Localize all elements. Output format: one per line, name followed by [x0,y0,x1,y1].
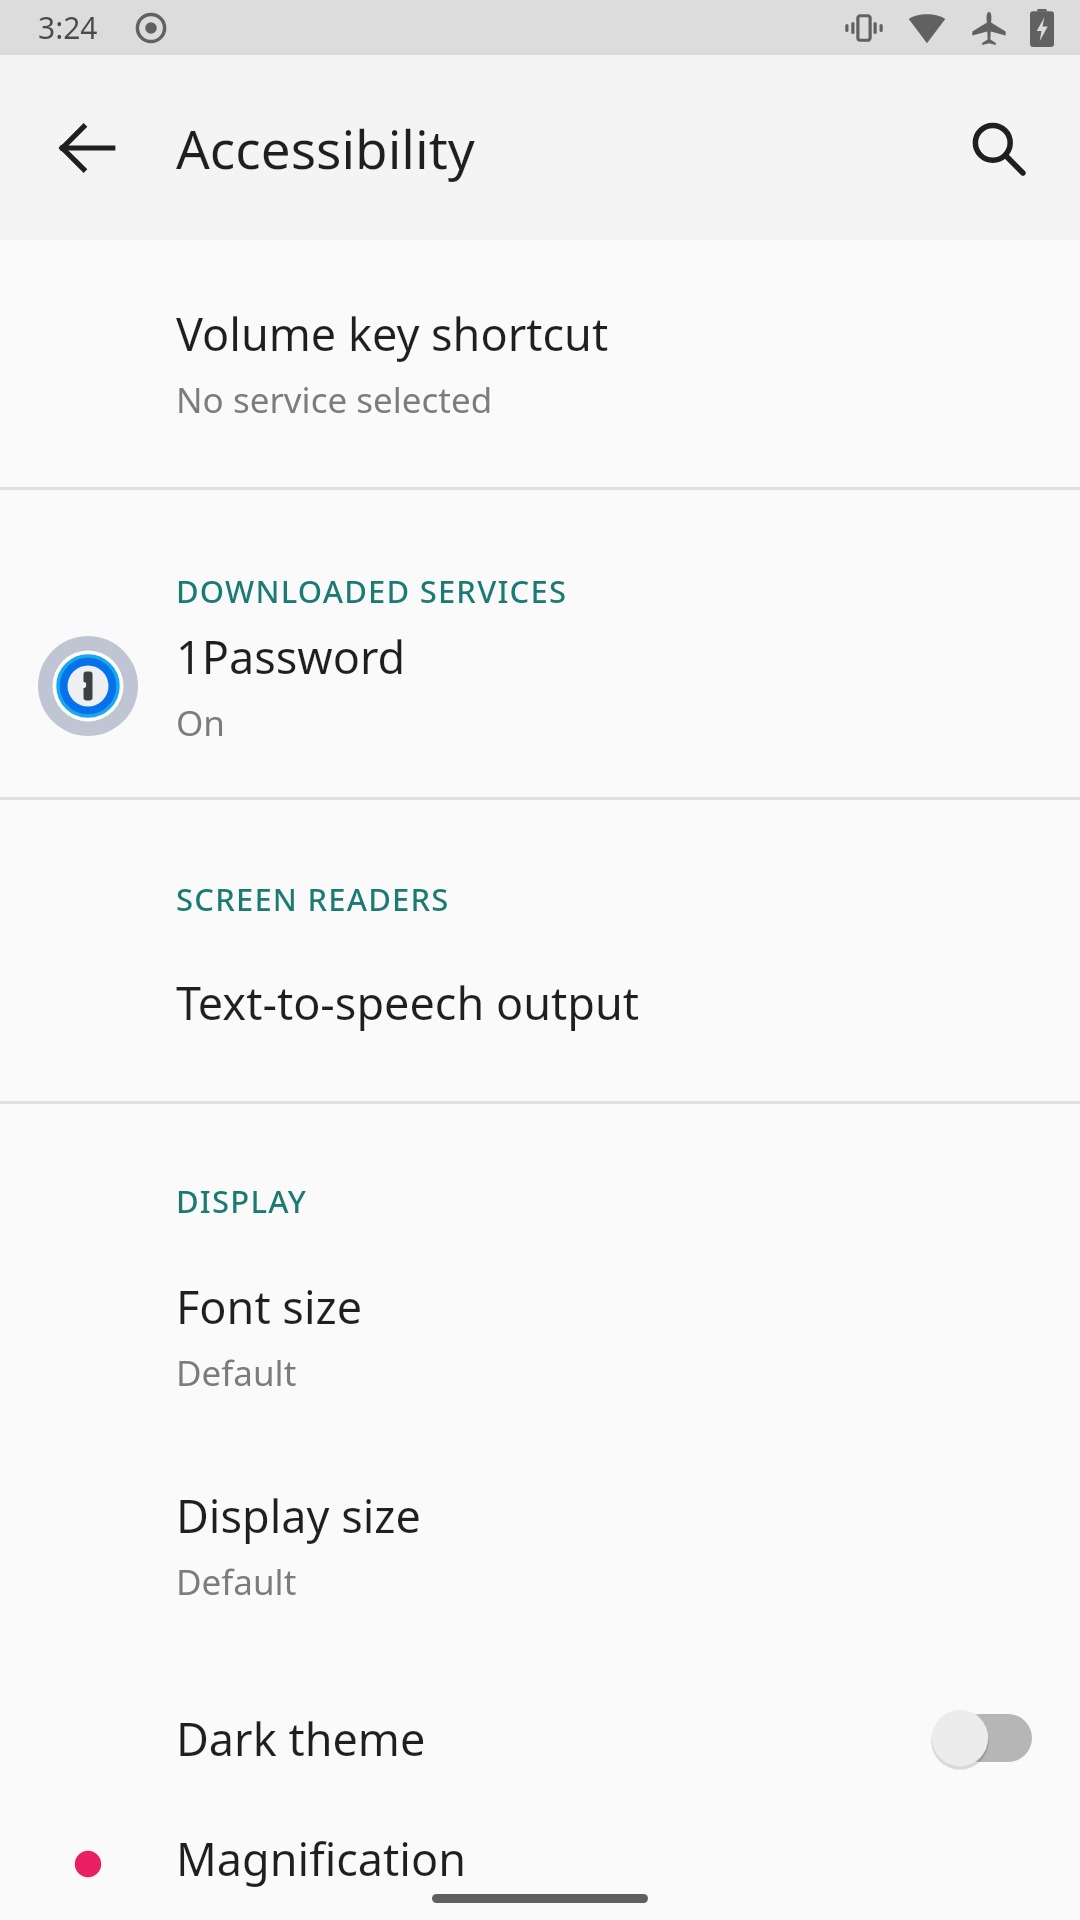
button[interactable]: 1Password [0,612,1080,797]
button[interactable]: Volume key shortcut [0,240,1080,487]
staticText: Default [176,1558,297,1606]
button[interactable]: Search [942,92,1054,204]
button[interactable]: Text-to-speech output [0,920,1080,1101]
button[interactable]: Display size [0,1441,1080,1650]
staticText: Dark theme [176,1708,928,1769]
staticText: 3:24 [38,7,98,48]
staticText: Default [176,1349,297,1397]
staticText: Volume key shortcut [176,303,609,364]
staticText: Text-to-speech output [176,972,639,1033]
staticText: Accessibility [176,112,475,184]
staticText: On [176,699,225,747]
staticText: DISPLAY [176,1180,308,1222]
button[interactable]: Magnification [0,1822,1080,1894]
staticText: 1Password [176,626,406,687]
staticText: Font size [176,1276,363,1337]
button[interactable]: Dark theme [0,1650,1080,1822]
staticText: SCREEN READERS [176,878,450,920]
staticText: No service selected [176,376,493,424]
button[interactable]: Font size [0,1222,1080,1441]
staticText: DOWNLOADED SERVICES [176,570,568,612]
staticText: Magnification [176,1828,466,1889]
staticText: Display size [176,1485,421,1546]
button[interactable]: Back [31,92,143,204]
